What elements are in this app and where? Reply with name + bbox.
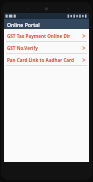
staticText: GST No.Verify [7,45,38,51]
other: Open GST Tax Payment Online Dir [82,33,86,39]
button[interactable]: Pan Card Link to Aadhar Card [4,54,89,65]
staticText: Pan Card Link to Aadhar Card [7,57,74,63]
staticText: Online Portal [7,21,40,28]
button[interactable]: GST Tax Payment Online Dir [4,30,89,41]
other: Open GST No.Verify [82,45,86,51]
staticText: GST Tax Payment Online Dir [7,33,71,39]
button[interactable]: GST No.Verify [4,42,89,53]
other: Open Pan Card Link to Aadhar Card [82,57,86,63]
button[interactable]: Online Portal [4,19,89,29]
